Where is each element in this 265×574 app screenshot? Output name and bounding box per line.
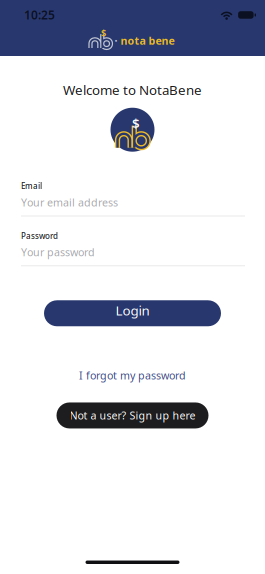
staticText: $ xyxy=(101,26,106,39)
button[interactable]: I forgot my password xyxy=(79,368,186,382)
staticText: I forgot my password xyxy=(79,368,186,382)
staticText: Password xyxy=(21,230,58,241)
staticText: Your password xyxy=(21,245,95,259)
staticText: Your email address xyxy=(21,195,118,209)
staticText: Not a user? Sign up here xyxy=(69,408,195,423)
staticText: Email xyxy=(21,181,42,191)
staticText: 10:25 xyxy=(24,7,55,23)
staticText: Login xyxy=(115,301,149,319)
button[interactable]: Not a user? Sign up here xyxy=(56,402,208,428)
staticText: · xyxy=(114,33,117,48)
button[interactable]: Login xyxy=(44,300,221,326)
staticText: Welcome to NotaBene xyxy=(63,81,202,99)
staticText: nota bene xyxy=(120,33,174,48)
staticText: $ xyxy=(132,114,140,132)
